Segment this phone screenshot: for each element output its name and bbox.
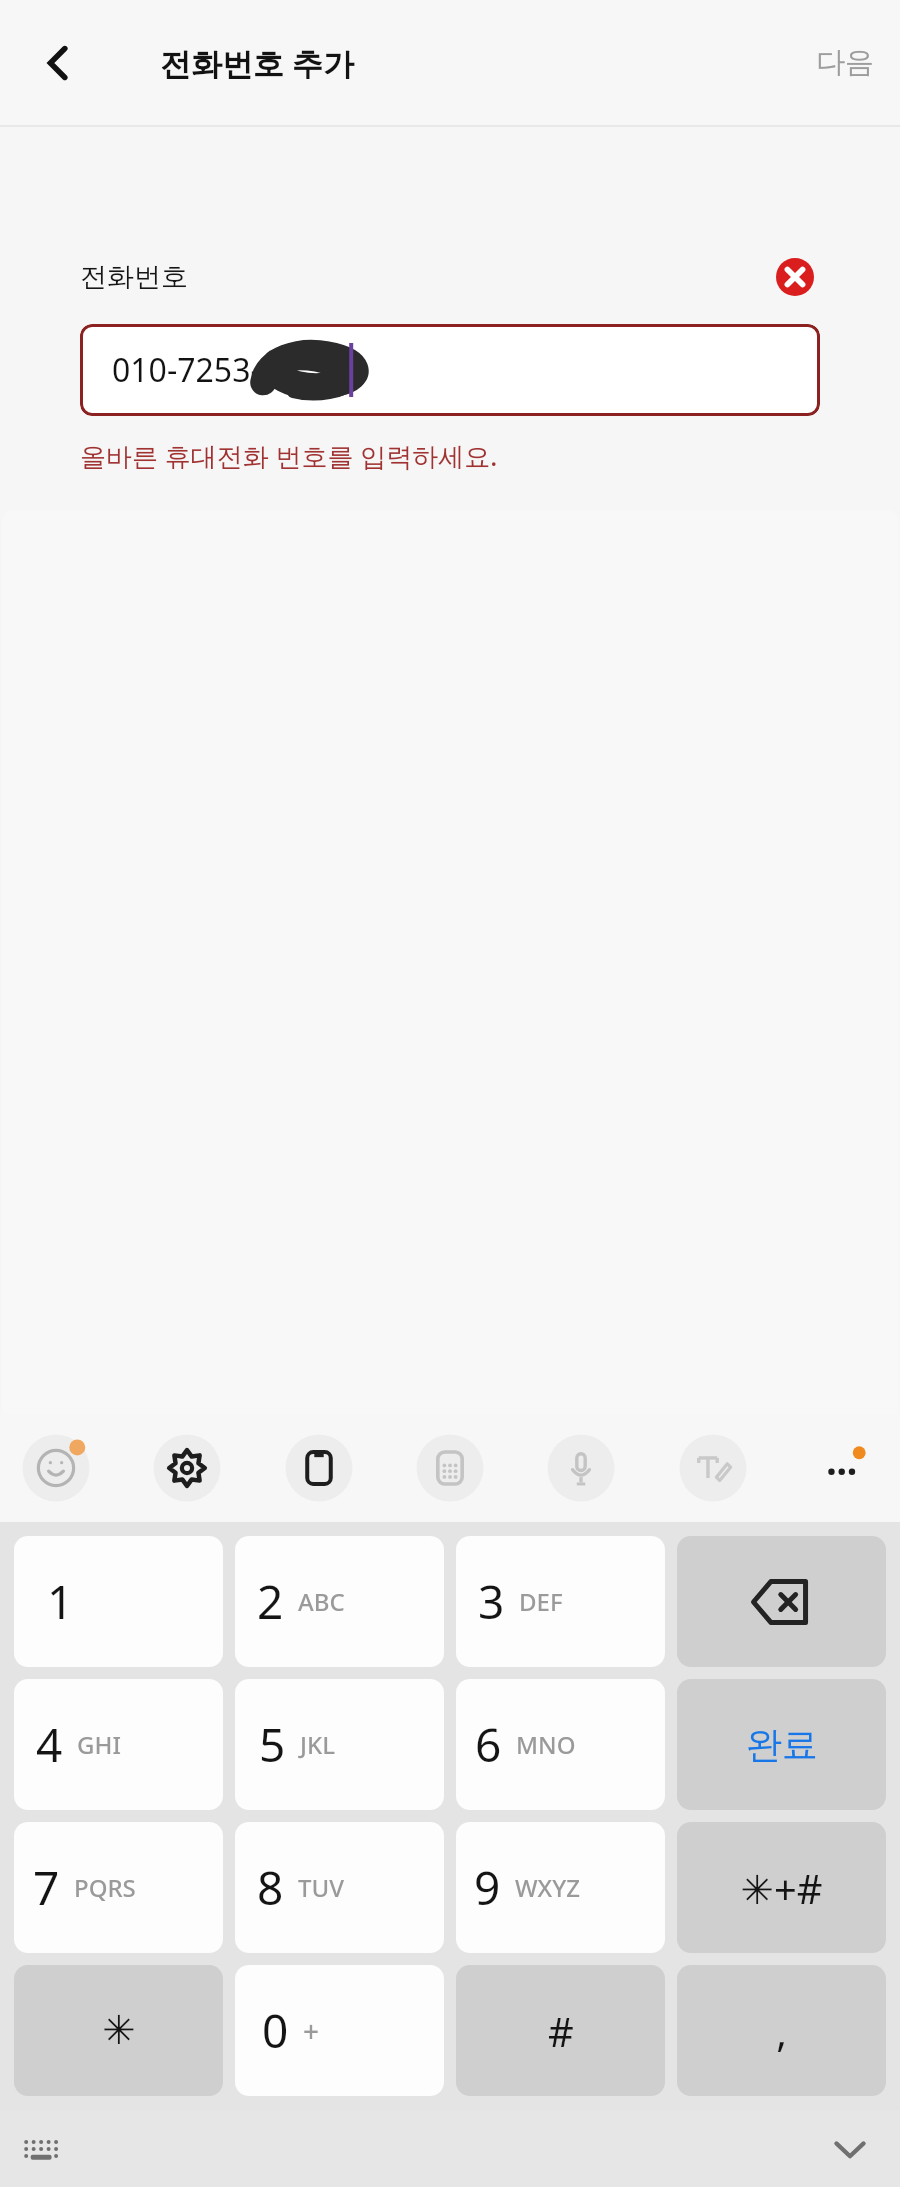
staticText: GHI — [77, 1728, 121, 1761]
button[interactable]: More options — [806, 1430, 882, 1506]
staticText: TUV — [298, 1871, 344, 1904]
button[interactable]: Handwriting — [675, 1430, 751, 1506]
staticText: MNO — [516, 1728, 576, 1761]
staticText: PQRS — [74, 1871, 136, 1904]
staticText: DEF — [519, 1585, 563, 1618]
staticText: 전화번호 추가 — [160, 42, 355, 84]
button[interactable]: ✳ — [14, 1965, 223, 2096]
staticText: , — [776, 2004, 787, 2058]
button[interactable]: Emoji — [18, 1430, 94, 1506]
staticText: ABC — [298, 1585, 345, 1618]
button[interactable]: Clear — [770, 252, 820, 302]
staticText: 6 — [475, 1713, 502, 1776]
button[interactable]: 0 — [235, 1965, 444, 2096]
staticText: 8 — [257, 1856, 284, 1919]
staticText: 7 — [33, 1856, 60, 1919]
staticText: 올바른 휴대전화 번호를 입력하세요. — [80, 438, 498, 474]
button[interactable]: 완료 — [677, 1679, 886, 1810]
staticText: ✳+# — [740, 1861, 823, 1915]
staticText: WXYZ — [515, 1871, 581, 1904]
staticText: 전화번호 — [80, 260, 188, 294]
staticText: JKL — [300, 1728, 335, 1761]
staticText: 9 — [474, 1856, 501, 1919]
button[interactable]: Back — [22, 27, 94, 99]
button[interactable]: 4 — [14, 1679, 223, 1810]
button[interactable]: 8 — [235, 1822, 444, 1953]
button[interactable]: 010-7253- — [80, 324, 820, 416]
staticText: 0 — [262, 1999, 289, 2062]
staticText: + — [303, 2012, 320, 2050]
button[interactable]: Clipboard — [281, 1430, 357, 1506]
button[interactable]: 7 — [14, 1822, 223, 1953]
button[interactable]: 5 — [235, 1679, 444, 1810]
button[interactable]: 1 — [14, 1536, 223, 1667]
staticText: 다음 — [816, 44, 874, 81]
staticText: 완료 — [746, 1722, 818, 1767]
button[interactable]: # — [456, 1965, 665, 2096]
staticText: 5 — [259, 1713, 286, 1776]
button[interactable]: 3 — [456, 1536, 665, 1667]
button[interactable]: Switch keyboard — [10, 2117, 74, 2181]
button[interactable]: 9 — [456, 1822, 665, 1953]
staticText: # — [548, 2004, 574, 2058]
button[interactable]: 6 — [456, 1679, 665, 1810]
staticText: ✳ — [102, 2007, 136, 2054]
button[interactable]: Keyboard settings — [149, 1430, 225, 1506]
button[interactable]: , — [677, 1965, 886, 2096]
button[interactable]: Number pad — [412, 1430, 488, 1506]
staticText: 1 — [47, 1570, 74, 1633]
staticText: 010-7253- — [112, 348, 261, 392]
button[interactable]: 다음 — [790, 24, 900, 101]
staticText: 4 — [36, 1713, 63, 1776]
staticText: 2 — [257, 1570, 284, 1633]
staticText: 3 — [478, 1570, 505, 1633]
button[interactable]: Hide keyboard — [818, 2117, 882, 2181]
button[interactable]: 2 — [235, 1536, 444, 1667]
button[interactable]: Voice input — [543, 1430, 619, 1506]
button[interactable]: Delete — [677, 1536, 886, 1667]
button[interactable]: ✳+# — [677, 1822, 886, 1953]
